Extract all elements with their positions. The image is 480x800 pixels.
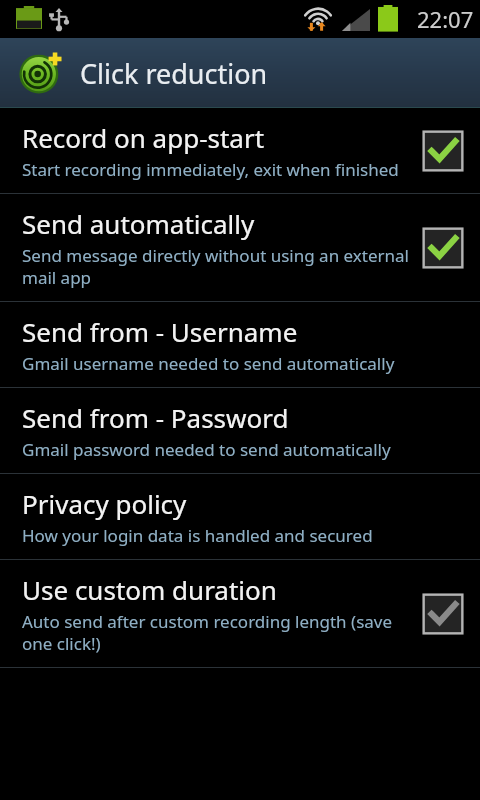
staticText: Start recording immediately, exit when f…: [22, 158, 399, 181]
staticText: Send from - Password: [22, 400, 289, 435]
button[interactable]: Toggle setting: [420, 591, 466, 637]
staticText: How your login data is handled and secur…: [22, 524, 373, 547]
button[interactable]: Toggle setting: [420, 128, 466, 174]
staticText: Gmail password needed to send automatica…: [22, 438, 391, 461]
staticText: Privacy policy: [22, 486, 187, 521]
staticText: 22:07: [417, 4, 474, 34]
staticText: Auto send after custom recording length …: [22, 610, 412, 655]
staticText: Use custom duration: [22, 572, 277, 607]
staticText: Gmail username needed to send automatica…: [22, 352, 395, 375]
button[interactable]: Record on app-start: [0, 108, 480, 193]
button[interactable]: Toggle setting: [420, 225, 466, 271]
staticText: Send automatically: [22, 206, 255, 241]
staticText: Send message directly without using an e…: [22, 244, 412, 289]
button[interactable]: Send automatically: [0, 194, 480, 301]
button[interactable]: Privacy policy: [0, 474, 480, 559]
staticText: Send from - Username: [22, 314, 298, 349]
staticText: Record on app-start: [22, 120, 265, 155]
button[interactable]: Send from - Password: [0, 388, 480, 473]
staticText: Click reduction: [80, 55, 268, 92]
button[interactable]: Use custom duration: [0, 560, 480, 667]
button[interactable]: Send from - Username: [0, 302, 480, 387]
